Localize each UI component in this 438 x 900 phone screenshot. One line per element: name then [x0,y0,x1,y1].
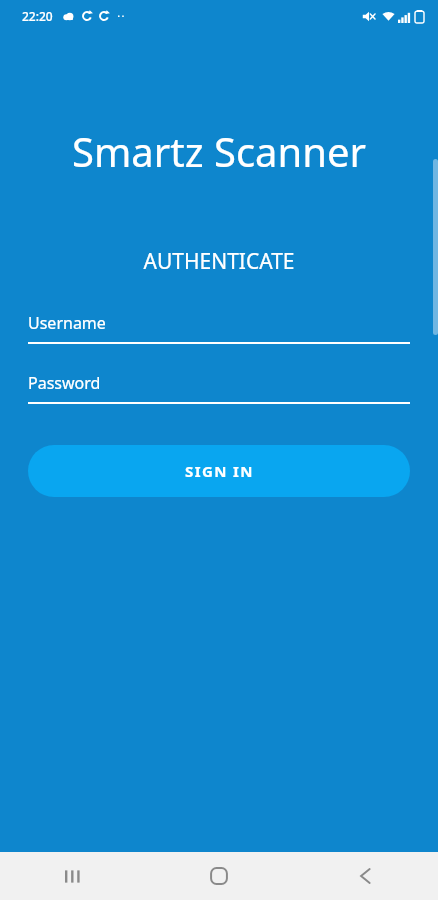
staticText: Password [28,372,101,394]
button[interactable]: Home [146,852,292,900]
staticText: SIGN IN [185,461,254,481]
button[interactable]: Recents [0,852,146,900]
button[interactable]: Back [292,852,438,900]
button[interactable]: Username [28,312,410,344]
button[interactable]: SIGN IN [28,445,410,497]
staticText: AUTHENTICATE [0,247,438,276]
button[interactable]: Password [28,372,410,404]
staticText: Smartz Scanner [0,124,438,178]
staticText: 22:20 [22,8,53,24]
staticText: Username [28,312,106,334]
